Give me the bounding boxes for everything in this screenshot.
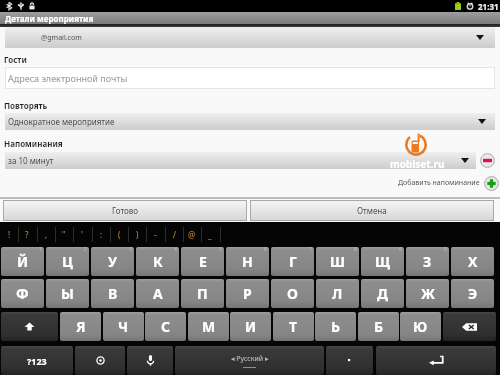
- staticText: Ф: [16, 284, 29, 303]
- staticText: Повторять: [4, 100, 48, 111]
- button[interactable]: Ц: [46, 247, 89, 276]
- staticText: Г: [289, 252, 297, 271]
- button[interactable]: Р: [226, 279, 269, 308]
- button[interactable]: ?123: [1, 346, 73, 375]
- button[interactable]: за 10 минут: [5, 152, 476, 169]
- button[interactable]: -: [146, 223, 164, 246]
- button[interactable]: Отмена: [250, 200, 494, 221]
- button[interactable]: Backspace: [443, 312, 496, 341]
- staticText: @gmail.com: [41, 33, 82, 43]
- button[interactable]: А: [136, 279, 179, 308]
- button[interactable]: К: [136, 247, 179, 276]
- staticText: ?123: [27, 355, 47, 367]
- button[interactable]: Й: [1, 247, 44, 276]
- button[interactable]: ): [128, 223, 146, 246]
- button[interactable]: /: [165, 223, 183, 246]
- button[interactable]: Э: [451, 279, 494, 308]
- button[interactable]: Адреса электронной почты: [5, 67, 495, 89]
- button[interactable]: Settings: [75, 346, 125, 375]
- staticText: З: [423, 252, 432, 271]
- button[interactable]: Щ: [361, 247, 404, 276]
- staticText: Р: [243, 284, 252, 303]
- button[interactable]: Я: [60, 312, 101, 341]
- button[interactable]: ,: [37, 223, 55, 246]
- staticText: А: [153, 284, 163, 303]
- staticText: Ж: [421, 284, 435, 303]
- button[interactable]: !: [0, 223, 18, 246]
- button[interactable]: П: [181, 279, 224, 308]
- staticText: У: [108, 252, 118, 271]
- staticText: 1: [39, 247, 42, 253]
- button[interactable]: З: [406, 247, 449, 276]
- button[interactable]: Space: [175, 346, 324, 375]
- staticText: Ю: [413, 317, 428, 336]
- button[interactable]: @gmail.com: [5, 27, 495, 48]
- button[interactable]: Однократное мероприятие: [5, 113, 495, 130]
- staticText: Гости: [4, 54, 27, 65]
- staticText: П: [197, 284, 208, 303]
- staticText: !: [8, 229, 11, 240]
- button[interactable]: Ь: [315, 312, 356, 341]
- staticText: 2: [84, 247, 87, 253]
- button[interactable]: В: [91, 279, 134, 308]
- button[interactable]: (: [110, 223, 128, 246]
- staticText: Детали мероприятия: [5, 13, 94, 24]
- staticText: К: [153, 252, 163, 271]
- button[interactable]: Готово: [3, 200, 247, 221]
- button[interactable]: И: [230, 312, 271, 341]
- staticText: Адреса электронной почты: [8, 72, 128, 84]
- button[interactable]: Д: [361, 279, 404, 308]
- staticText: 4: [174, 247, 177, 253]
- staticText: Ы: [61, 284, 74, 303]
- button[interactable]: С: [145, 312, 186, 341]
- button[interactable]: Х: [451, 247, 494, 276]
- button[interactable]: ?: [18, 223, 36, 246]
- button[interactable]: Enter: [376, 346, 496, 375]
- button[interactable]: М: [188, 312, 229, 341]
- button[interactable]: Л: [316, 279, 359, 308]
- button[interactable]: @: [183, 223, 201, 246]
- staticText: Отмена: [357, 205, 387, 216]
- button[interactable]: Т: [273, 312, 314, 341]
- staticText: Д: [377, 284, 388, 303]
- staticText: mobiset.ru: [390, 157, 445, 170]
- button[interactable]: Добавить напоминание: [398, 175, 499, 191]
- button[interactable]: Б: [358, 312, 399, 341]
- staticText: Х: [468, 252, 478, 271]
- staticText: Е: [199, 252, 207, 271]
- button[interactable]: Н: [226, 247, 269, 276]
- staticText: Ч: [118, 317, 129, 336]
- button[interactable]: Г: [271, 247, 314, 276]
- button[interactable]: :: [92, 223, 110, 246]
- staticText: Й: [17, 252, 29, 271]
- staticText: ": [62, 229, 66, 240]
- staticText: Н: [242, 252, 253, 271]
- button[interactable]: У: [91, 247, 134, 276]
- button[interactable]: ': [73, 223, 91, 246]
- button[interactable]: Ы: [46, 279, 89, 308]
- button[interactable]: Удалить напоминание: [479, 152, 495, 168]
- button[interactable]: Ш: [316, 247, 359, 276]
- staticText: Э: [468, 284, 478, 303]
- button[interactable]: Ф: [1, 279, 44, 308]
- button[interactable]: Ж: [406, 279, 449, 308]
- staticText: ,: [45, 229, 48, 240]
- button[interactable]: Period: [326, 346, 373, 375]
- staticText: Б: [374, 317, 384, 336]
- button[interactable]: Voice input: [127, 346, 173, 375]
- staticText: 21:31: [478, 1, 499, 11]
- button[interactable]: ": [55, 223, 73, 246]
- button[interactable]: Ч: [103, 312, 144, 341]
- button[interactable]: Е: [181, 247, 224, 276]
- button[interactable]: Ю: [400, 312, 441, 341]
- staticText: -: [154, 229, 157, 240]
- button[interactable]: _: [201, 223, 219, 246]
- button[interactable]: О: [271, 279, 314, 308]
- staticText: 7: [309, 247, 312, 253]
- staticText: В: [108, 284, 118, 303]
- staticText: Щ: [375, 252, 391, 271]
- staticText: Т: [289, 317, 298, 336]
- staticText: Добавить напоминание: [398, 178, 480, 188]
- staticText: Готово: [112, 205, 139, 216]
- button[interactable]: Shift: [1, 312, 58, 341]
